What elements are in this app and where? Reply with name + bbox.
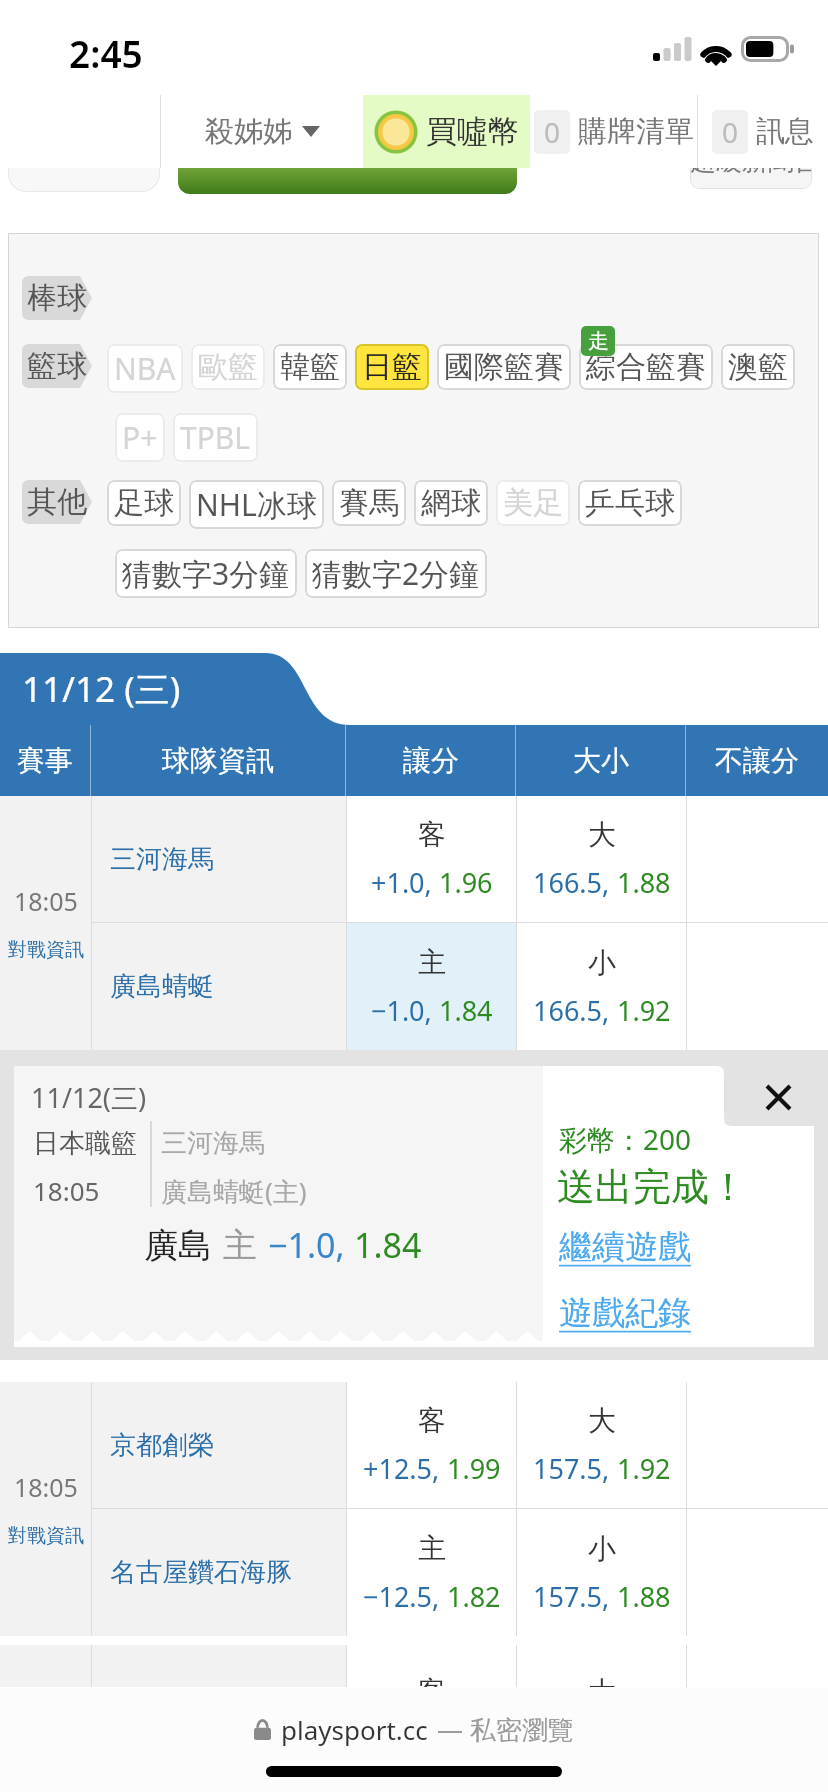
button[interactable]: 京都創榮	[92, 1382, 346, 1508]
button[interactable]: 大	[517, 796, 686, 922]
staticText: 客	[418, 1674, 446, 1687]
staticText: 1.82	[447, 1578, 501, 1615]
staticText: 1.88	[617, 864, 671, 901]
button[interactable]: 足球	[107, 480, 181, 526]
staticText: 走	[588, 328, 609, 354]
staticText: 韓籃	[280, 348, 340, 386]
staticText: 166.5,	[533, 992, 617, 1029]
staticText: 猜數字2分鐘	[312, 553, 480, 594]
button[interactable]: P+	[115, 413, 165, 462]
button[interactable]: 買噓幣	[363, 95, 530, 168]
staticText: 大	[588, 817, 616, 852]
staticText: 彩幣：200	[559, 1120, 692, 1158]
staticText: 11/12 (三)	[22, 665, 181, 713]
staticText: 歐籃	[198, 348, 258, 386]
staticText: 買噓幣	[426, 112, 519, 151]
staticText: 購牌清單	[578, 113, 694, 150]
staticText: 0	[544, 113, 561, 151]
staticText: 國際籃賽	[444, 348, 564, 386]
button[interactable]: 小	[517, 1509, 686, 1636]
button[interactable]: Close	[724, 1066, 828, 1126]
button[interactable]: 對戰資訊	[8, 1524, 84, 1548]
staticText: −1.0,	[371, 992, 439, 1029]
staticText: 籃球	[27, 347, 87, 385]
staticText: 猜數字3分鐘	[122, 553, 290, 594]
button[interactable]: 澳籃	[721, 344, 795, 390]
button[interactable]: 網球	[414, 480, 488, 526]
button[interactable]: 遊戲紀錄	[559, 1292, 691, 1334]
button[interactable]: 0	[530, 95, 697, 168]
button[interactable]: 賽馬	[332, 480, 406, 526]
staticText: 賽馬	[339, 484, 399, 522]
button[interactable]: 猜數字3分鐘	[115, 549, 297, 598]
button[interactable]: 韓籃	[273, 344, 347, 390]
staticText: 不讓分	[715, 743, 799, 778]
button[interactable]: 大	[517, 1382, 686, 1508]
staticText: 送出完成！	[557, 1163, 747, 1211]
staticText: 1.92	[617, 992, 671, 1029]
button[interactable]: 殺姊姊	[161, 95, 363, 168]
button[interactable]: 日籃	[355, 344, 429, 390]
staticText: +12.5,	[363, 1450, 447, 1487]
staticText: 11/12(三)	[31, 1079, 147, 1116]
staticText: 1.99	[447, 1450, 501, 1487]
staticText: P+	[122, 417, 158, 458]
staticText: 讓分	[403, 743, 459, 778]
button[interactable]: 國際籃賽	[437, 344, 571, 390]
staticText: TPBL	[180, 417, 251, 458]
staticText: 客	[418, 817, 446, 852]
button[interactable]: 客	[347, 1382, 516, 1508]
button[interactable]: NHL冰球	[189, 480, 324, 529]
staticText: 乒乓球	[585, 484, 675, 522]
staticText: 綜合籃賽	[586, 348, 706, 386]
staticText: 1.88	[617, 1578, 671, 1615]
button[interactable]: 歐籃	[191, 344, 265, 390]
staticText: 廣島蜻蜓(主)	[161, 1173, 307, 1209]
button[interactable]: 對戰資訊	[8, 938, 84, 962]
button[interactable]: 0	[698, 95, 828, 168]
staticText: 0	[722, 113, 739, 151]
button[interactable]: 繼續遊戲	[559, 1226, 691, 1268]
staticText: −1.0,	[268, 1222, 345, 1268]
staticText: 三河海馬	[110, 843, 214, 876]
staticText: playsport.cc	[281, 1712, 428, 1747]
staticText: 小	[588, 945, 616, 980]
button[interactable]: 綜合籃賽	[579, 344, 713, 390]
staticText: 18:05	[33, 1173, 100, 1208]
button[interactable]: TPBL	[173, 413, 258, 462]
staticText: 主	[418, 945, 446, 980]
button[interactable]: 名古屋鑽石海豚	[92, 1509, 346, 1636]
staticText: 三河海馬	[161, 1127, 265, 1160]
staticText: 1.92	[617, 1450, 671, 1487]
staticText: 157.5,	[533, 1450, 617, 1487]
staticText: 京都創榮	[110, 1429, 214, 1462]
staticText: 其他	[27, 483, 87, 521]
staticText: 足球	[114, 484, 174, 522]
staticText: 客	[418, 1403, 446, 1438]
staticText: 18:05	[14, 1470, 78, 1504]
button[interactable]: 廣島蜻蜓	[92, 923, 346, 1050]
staticText: 大小	[573, 743, 629, 778]
staticText: 主	[223, 1224, 257, 1267]
button[interactable]: 主	[347, 1509, 516, 1636]
staticText: −12.5,	[363, 1578, 447, 1615]
staticText: 1.84	[354, 1222, 422, 1268]
staticText: 1.84	[439, 992, 493, 1029]
button[interactable]: 主	[347, 923, 516, 1050]
button[interactable]: 美足	[496, 480, 570, 526]
button[interactable]: 猜數字2分鐘	[305, 549, 487, 598]
button[interactable]: NBA	[107, 344, 183, 393]
staticText: 1.96	[439, 864, 493, 901]
staticText: NHL冰球	[196, 484, 317, 525]
button[interactable]: 三河海馬	[92, 796, 346, 922]
staticText: 網球	[421, 484, 481, 522]
button[interactable]: 乒乓球	[578, 480, 682, 526]
staticText: 美足	[503, 484, 563, 522]
button[interactable]: 客	[347, 796, 516, 922]
staticText: NBA	[114, 348, 176, 389]
button[interactable]: 小	[517, 923, 686, 1050]
